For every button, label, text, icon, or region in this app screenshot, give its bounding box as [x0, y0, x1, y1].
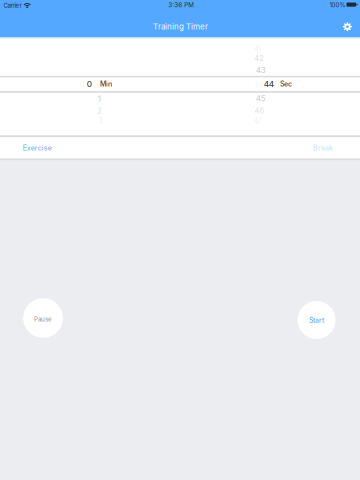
staticText: Sec: [280, 80, 292, 88]
staticText: 100%: [330, 1, 346, 9]
staticText: 45: [256, 93, 266, 103]
button[interactable]: Settings: [333, 14, 360, 40]
staticText: 46: [254, 106, 264, 115]
staticText: Carrier: [4, 2, 22, 9]
staticText: 3: [98, 117, 102, 125]
staticText: 43: [256, 65, 266, 75]
staticText: Training Timer: [153, 22, 208, 31]
button[interactable]: Pause: [23, 298, 63, 338]
button[interactable]: Break: [300, 137, 346, 159]
staticText: 3:36 PM: [168, 1, 194, 9]
staticText: Break: [313, 144, 333, 152]
staticText: 44: [264, 79, 274, 89]
staticText: Min: [100, 80, 112, 88]
button[interactable]: Start: [298, 301, 336, 339]
staticText: 47: [254, 117, 262, 125]
staticText: 42: [254, 54, 264, 63]
staticText: 0: [87, 79, 92, 89]
staticText: Pause: [34, 315, 52, 323]
button[interactable]: Exercise: [10, 137, 64, 159]
staticText: 2: [97, 106, 102, 115]
staticText: 1: [98, 94, 101, 103]
staticText: Start: [309, 316, 324, 324]
staticText: Exercise: [23, 144, 52, 152]
staticText: 41: [254, 45, 261, 53]
